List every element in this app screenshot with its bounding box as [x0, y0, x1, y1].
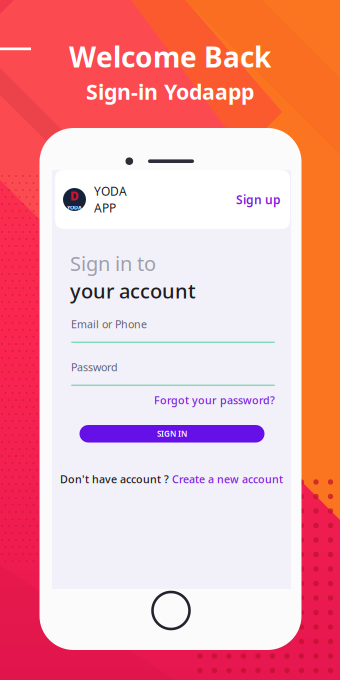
button[interactable]: Create a new account: [172, 472, 283, 486]
staticText: Create a new account: [172, 472, 283, 486]
staticText: Password: [71, 360, 118, 374]
staticText: Sign in to: [70, 250, 156, 277]
staticText: Welcome Back: [69, 38, 271, 75]
staticText: SIGN IN: [157, 428, 187, 439]
staticText: YODA: [67, 204, 82, 211]
button[interactable]: Forgot your password?: [71, 394, 275, 406]
staticText: Forgot your password?: [154, 393, 275, 407]
staticText: Sign-in Yodaapp: [86, 77, 254, 105]
staticText: Email or Phone: [71, 317, 147, 331]
staticText: APP: [94, 200, 116, 216]
staticText: Don't have account ?: [60, 472, 169, 486]
staticText: YODA: [94, 183, 127, 199]
staticText: Sign up: [236, 191, 281, 207]
button[interactable]: SIGN IN: [79, 425, 264, 442]
button[interactable]: Sign up: [236, 191, 281, 207]
staticText: your account: [70, 278, 196, 304]
staticText: D: [70, 188, 79, 204]
